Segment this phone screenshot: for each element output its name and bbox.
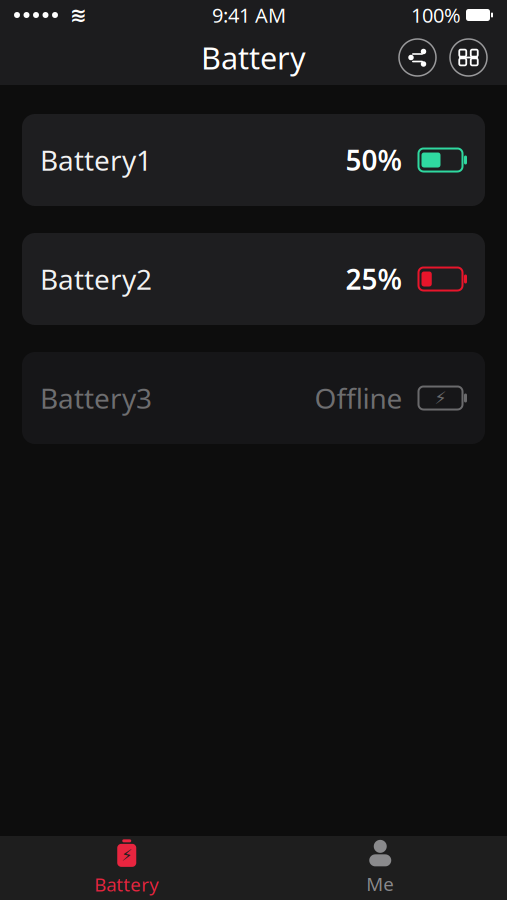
button[interactable]: Battery1 bbox=[22, 114, 485, 206]
staticText: Battery bbox=[94, 872, 159, 897]
button[interactable]: Battery3 bbox=[22, 352, 485, 444]
staticText: 9:41 AM bbox=[212, 2, 286, 28]
staticText: Battery2 bbox=[40, 260, 152, 298]
button[interactable]: Battery2 bbox=[22, 233, 485, 325]
button[interactable]: Share bbox=[399, 39, 436, 76]
staticText: ⚡︎ bbox=[121, 846, 132, 864]
staticText: Battery3 bbox=[40, 379, 152, 417]
staticText: Battery bbox=[201, 37, 306, 78]
staticText: Me bbox=[366, 871, 394, 896]
staticText: 50% bbox=[345, 141, 402, 179]
staticText: ⚡︎ bbox=[434, 388, 446, 408]
button[interactable]: ⚡︎ bbox=[0, 836, 253, 900]
button[interactable]: Scan bbox=[450, 39, 487, 76]
staticText: 100% bbox=[411, 2, 461, 28]
staticText: ≋ bbox=[70, 4, 87, 26]
staticText: Offline bbox=[314, 379, 402, 417]
staticText: Battery1 bbox=[40, 141, 152, 179]
button[interactable]: Me bbox=[253, 836, 507, 900]
staticText: 25% bbox=[345, 260, 402, 298]
